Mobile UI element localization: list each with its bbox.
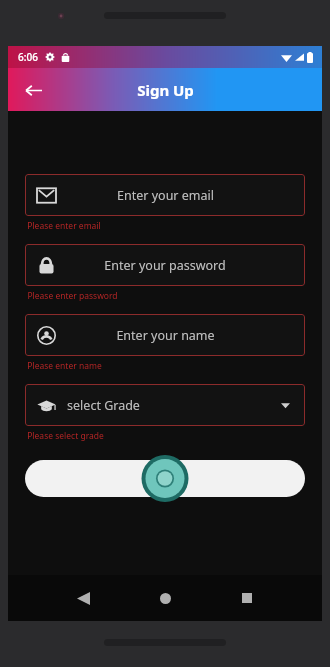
staticText: Please enter email <box>27 220 101 232</box>
staticText: Please enter name <box>27 360 102 372</box>
staticText: Please select grade <box>27 430 104 442</box>
staticText: 6:06 <box>18 50 38 64</box>
button[interactable]: Recent apps <box>232 583 262 613</box>
staticText: select Grade <box>67 397 140 414</box>
button[interactable]: Sign Up <box>25 460 305 497</box>
staticText: Sign Up <box>142 470 188 487</box>
staticText: Enter your name <box>116 327 215 344</box>
button[interactable]: Back <box>18 75 48 105</box>
button[interactable]: Enter your password <box>25 244 305 286</box>
staticText: Please enter password <box>27 290 118 302</box>
button[interactable]: select Grade <box>25 384 305 426</box>
button[interactable]: Back <box>68 583 98 613</box>
button[interactable]: Enter your name <box>25 314 305 356</box>
button[interactable]: Home <box>150 583 180 613</box>
staticText: Enter your password <box>104 257 226 274</box>
staticText: Sign Up <box>137 80 194 100</box>
staticText: Enter your email <box>117 187 214 204</box>
button[interactable]: Enter your email <box>25 174 305 216</box>
